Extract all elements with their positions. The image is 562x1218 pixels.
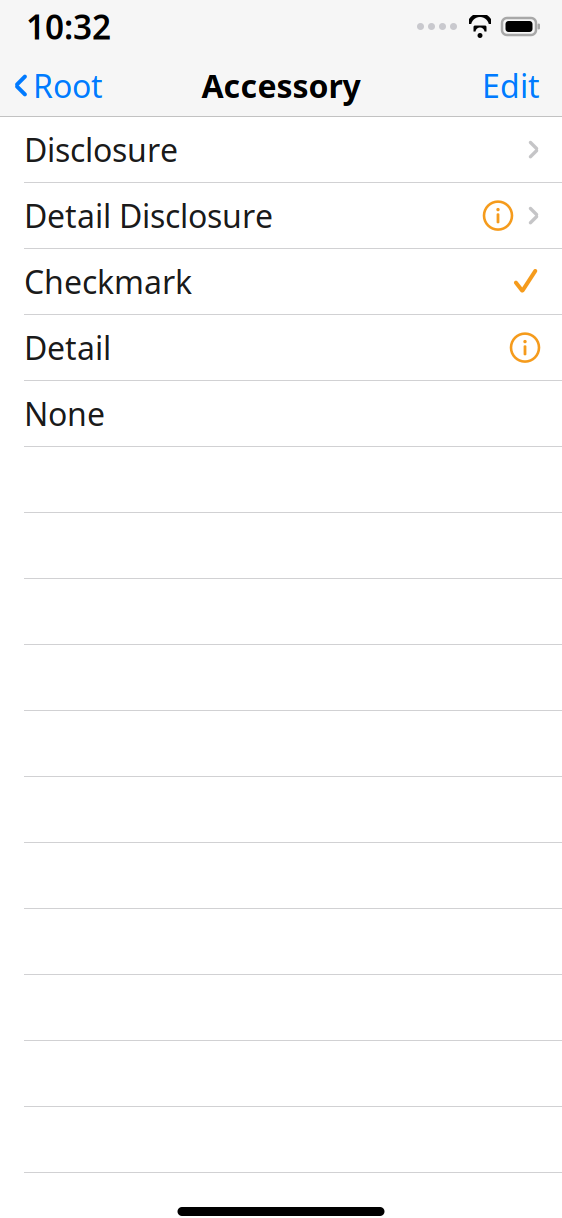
- button[interactable]: Checkmark: [0, 249, 562, 315]
- button[interactable]: Detail: [0, 315, 562, 381]
- staticText: None: [24, 392, 105, 435]
- button[interactable]: None: [0, 381, 562, 447]
- button[interactable]: Detail Disclosure: [0, 183, 562, 249]
- staticText: Root: [33, 64, 103, 107]
- staticText: Edit: [482, 64, 540, 107]
- button[interactable]: Edit: [468, 59, 554, 111]
- button[interactable]: Disclosure: [0, 117, 562, 183]
- staticText: 10:32: [26, 4, 111, 49]
- staticText: Detail Disclosure: [24, 194, 273, 237]
- staticText: Disclosure: [24, 128, 178, 171]
- button[interactable]: Root: [0, 59, 111, 111]
- staticText: Checkmark: [24, 260, 192, 303]
- staticText: Detail: [24, 326, 111, 369]
- staticText: Accessory: [201, 64, 360, 107]
